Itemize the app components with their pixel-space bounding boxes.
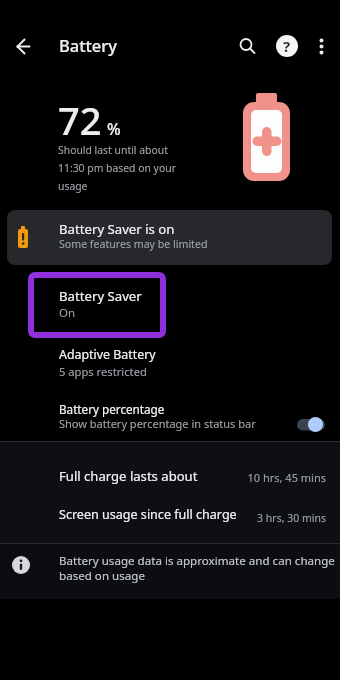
staticText: Adaptive Battery xyxy=(59,346,156,363)
button[interactable]: ? xyxy=(276,35,298,57)
staticText: Battery xyxy=(59,34,118,56)
staticText: Battery Saver xyxy=(59,287,142,305)
button[interactable] xyxy=(8,31,39,62)
button[interactable] xyxy=(310,34,334,59)
staticText: Screen usage since full charge xyxy=(59,506,237,523)
staticText: Battery Saver is on xyxy=(59,220,175,238)
staticText: Full charge lasts about xyxy=(59,467,198,485)
button[interactable] xyxy=(0,274,340,338)
button[interactable] xyxy=(293,412,335,437)
staticText: Show battery percentage in status bar xyxy=(59,416,256,431)
staticText: Some features may be limited xyxy=(59,237,208,251)
staticText: % xyxy=(107,118,121,140)
staticText: 5 apps restricted xyxy=(59,364,147,379)
staticText: 3 hrs, 30 mins xyxy=(200,511,326,680)
staticText: 10 hrs, 45 mins xyxy=(200,470,326,680)
button[interactable] xyxy=(0,500,340,542)
staticText: 72 xyxy=(58,94,102,146)
staticText: On xyxy=(59,305,76,321)
button[interactable] xyxy=(0,458,340,500)
button[interactable]: Battery Saver is on xyxy=(7,210,332,265)
staticText: Battery usage data is approximate and ca… xyxy=(59,553,335,584)
button[interactable] xyxy=(0,342,340,390)
button[interactable] xyxy=(235,34,260,59)
staticText: Battery percentage xyxy=(59,401,165,417)
staticText: Should last until about 11:30 pm based o… xyxy=(58,143,176,193)
staticText: ? xyxy=(283,36,291,56)
button[interactable] xyxy=(0,396,340,444)
